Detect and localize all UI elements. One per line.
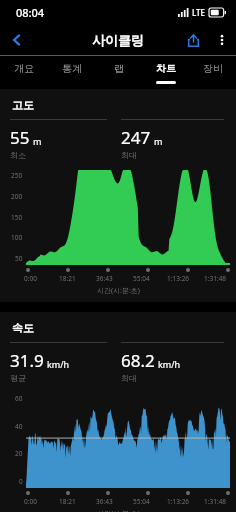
staticText: 55:04 [133, 497, 150, 506]
staticText: 차트 [156, 62, 176, 75]
button[interactable]: 고도 [0, 89, 236, 302]
staticText: 20 [15, 449, 23, 458]
staticText: 1:13:26 [167, 497, 190, 506]
staticText: 1:31:48 [204, 497, 227, 506]
staticText: m [154, 135, 163, 147]
staticText: 고도 [12, 98, 34, 112]
staticText: 247 [121, 126, 151, 149]
staticText: 속도 [12, 321, 34, 335]
staticText: 평균 [10, 373, 26, 383]
staticText: km/h [47, 358, 70, 370]
staticText: 최대 [121, 150, 137, 160]
staticText: 150 [11, 213, 23, 222]
staticText: 1:13:26 [167, 274, 190, 283]
staticText: 200 [11, 192, 23, 201]
staticText: LTE [192, 7, 206, 18]
staticText: 18:21 [59, 497, 76, 506]
button[interactable]: 통계 [48, 56, 95, 86]
staticText: km/h [158, 358, 181, 370]
staticText: 랩 [114, 62, 124, 75]
button[interactable]: Back [0, 24, 34, 55]
button[interactable]: 속도 [0, 312, 236, 512]
staticText: 시간(시:분:초) [97, 286, 140, 296]
staticText: 60 [15, 394, 23, 403]
staticText: m [33, 135, 42, 147]
staticText: 55 [10, 126, 30, 149]
button[interactable]: 개요 [0, 56, 48, 86]
staticText: 36:43 [96, 274, 113, 283]
button[interactable]: 장비 [189, 56, 236, 86]
button[interactable]: Share [178, 25, 208, 55]
staticText: 0:00 [24, 274, 37, 283]
staticText: 1:31:48 [204, 274, 227, 283]
staticText: 55:04 [133, 274, 150, 283]
staticText: 0:00 [24, 497, 37, 506]
staticText: 36:43 [96, 497, 113, 506]
staticText: 개요 [14, 62, 34, 75]
button[interactable]: More options [208, 26, 236, 54]
button[interactable]: 차트 [142, 56, 189, 86]
staticText: 18:21 [59, 274, 76, 283]
staticText: 100 [11, 233, 23, 242]
staticText: 장비 [203, 62, 223, 75]
staticText: 통계 [62, 62, 82, 75]
staticText: 최소 [10, 150, 26, 160]
staticText: 40 [15, 422, 23, 431]
staticText: 31.9 [10, 349, 44, 372]
staticText: 50 [15, 254, 23, 263]
staticText: 최대 [121, 373, 137, 383]
staticText: 사이클링 [92, 32, 144, 48]
staticText: 08:04 [16, 5, 45, 20]
staticText: 0 [19, 477, 23, 486]
staticText: 68.2 [121, 349, 155, 372]
staticText: 250 [11, 171, 23, 180]
button[interactable]: 랩 [95, 56, 142, 86]
staticText: 시간(시:분:초) [97, 509, 140, 512]
